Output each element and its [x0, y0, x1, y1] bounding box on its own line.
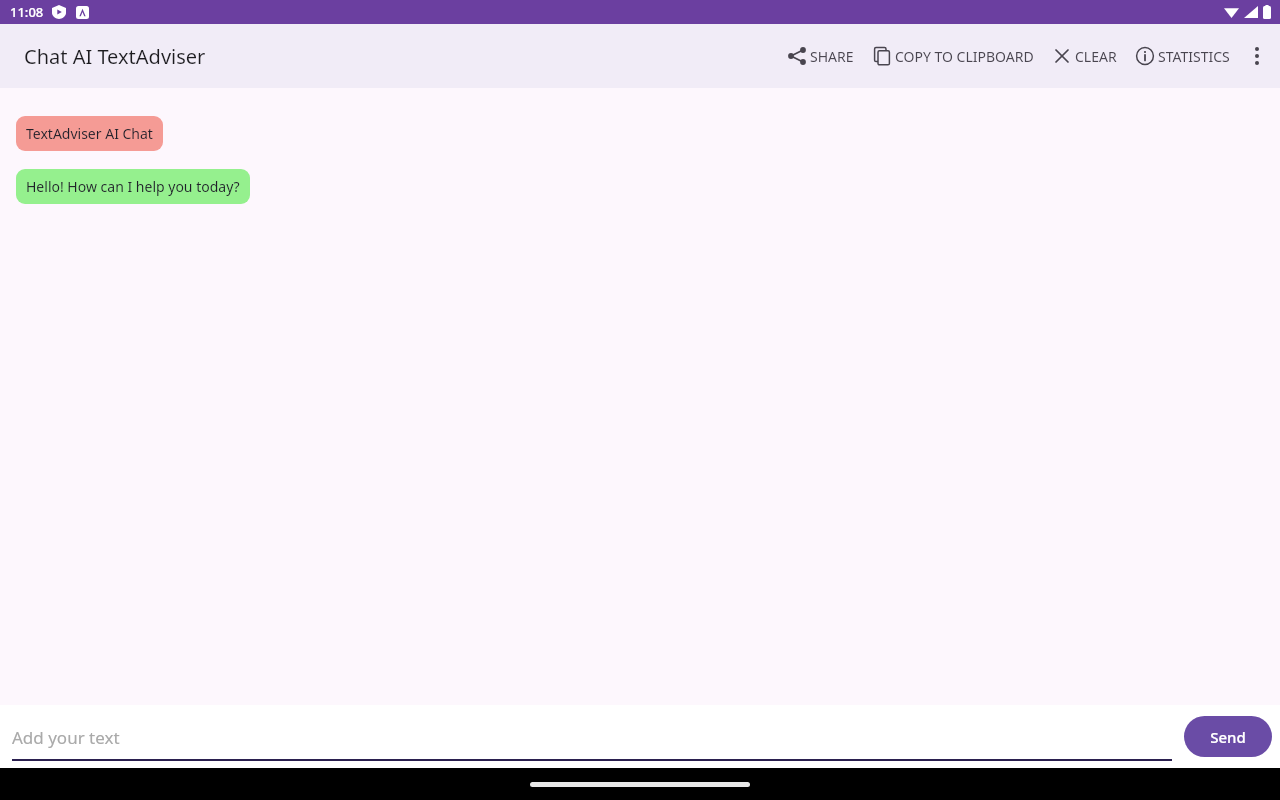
staticText: Chat AI TextAdviser	[24, 43, 206, 70]
staticText: COPY TO CLIPBOARD	[895, 47, 1034, 66]
staticText: TextAdviser AI Chat	[26, 124, 153, 143]
button[interactable]: Send	[1184, 716, 1272, 757]
staticText: CLEAR	[1075, 47, 1117, 66]
button[interactable]: CLEAR	[1050, 40, 1119, 72]
button[interactable]: SHARE	[785, 40, 856, 72]
staticText: SHARE	[810, 47, 854, 66]
staticText: Send	[1210, 727, 1246, 747]
button[interactable]: More options	[1240, 39, 1274, 73]
button[interactable]: Add your text	[12, 713, 1172, 761]
button[interactable]: Hello! How can I help you today?	[16, 169, 250, 204]
staticText: Add your text	[12, 726, 120, 749]
staticText: Hello! How can I help you today?	[26, 177, 240, 196]
button[interactable]: COPY TO CLIPBOARD	[870, 40, 1036, 72]
button[interactable]: STATISTICS	[1133, 40, 1232, 72]
staticText: STATISTICS	[1158, 47, 1230, 66]
staticText: 11:08	[10, 3, 44, 21]
button[interactable]: TextAdviser AI Chat	[16, 116, 163, 151]
